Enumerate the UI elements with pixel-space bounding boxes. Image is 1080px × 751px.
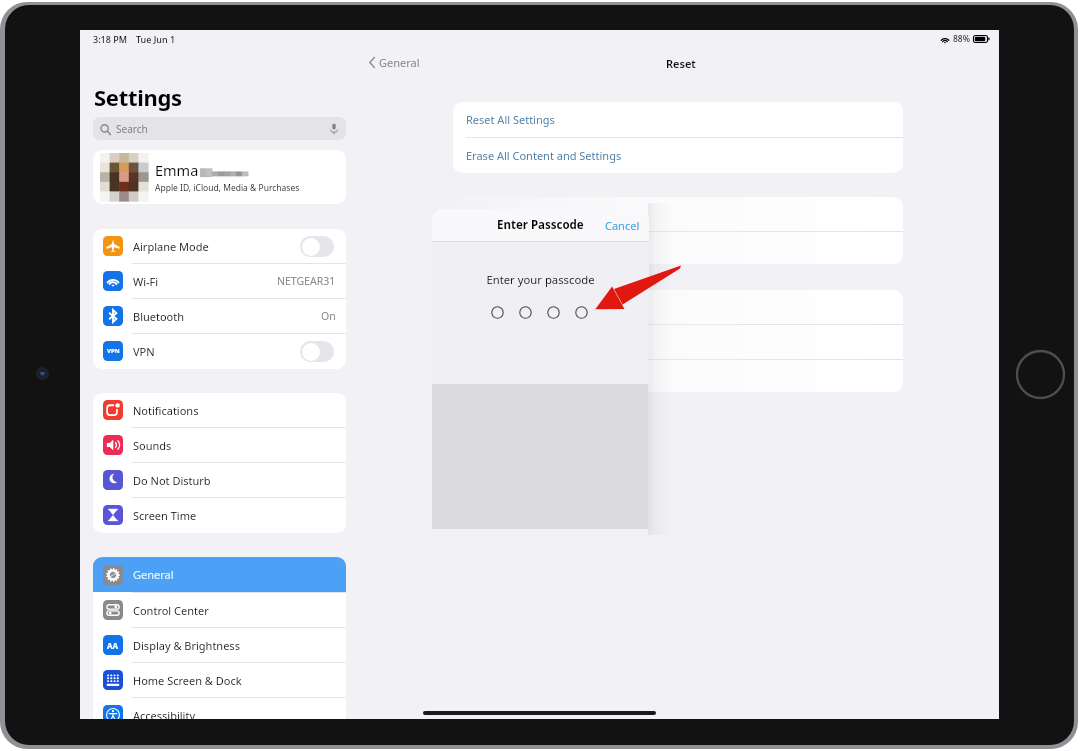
staticText: Home Screen & Dock (133, 673, 242, 688)
staticText: Reset (666, 56, 696, 71)
staticText: Bluetooth (133, 309, 185, 324)
button[interactable]: Bluetooth (93, 299, 346, 333)
staticText: 88% (953, 33, 970, 45)
button[interactable]: Search (93, 117, 346, 140)
button[interactable]: Reset All Settings (453, 102, 903, 137)
staticText: VPN (133, 344, 155, 359)
button[interactable]: Home button (1015, 349, 1066, 400)
button[interactable]: Sounds (93, 428, 346, 462)
button[interactable]: Do Not Disturb (93, 463, 346, 497)
staticText: Do Not Disturb (133, 473, 211, 488)
staticText: Enter Passcode (497, 217, 584, 233)
staticText: Enter your passcode (432, 272, 649, 287)
button[interactable]: VPN (93, 334, 346, 368)
staticText: 3:18 PM (93, 33, 127, 45)
button[interactable]: Cancel (605, 218, 640, 233)
button[interactable]: Erase All Content and Settings (453, 138, 903, 173)
staticText: Apple ID, iCloud, Media & Purchases (155, 182, 300, 194)
button[interactable]: Screen Time (93, 498, 346, 532)
button[interactable]: Airplane Mode toggle (300, 236, 334, 257)
button[interactable]: Notifications (93, 393, 346, 427)
staticText: Sounds (133, 438, 172, 453)
staticText: Accessibility (133, 708, 196, 719)
staticText: Cancel (605, 218, 640, 233)
other: Pointer arrow (594, 263, 684, 313)
staticText: Wi-Fi (133, 274, 159, 289)
button[interactable]: Accessibility (93, 698, 346, 719)
staticText: NETGEAR31 (277, 274, 336, 288)
staticText: Erase All Content and Settings (466, 148, 622, 163)
staticText: General (133, 567, 174, 582)
staticText: Reset All Settings (466, 112, 555, 127)
staticText: Tue Jun 1 (136, 33, 176, 45)
button[interactable]: AA (93, 628, 346, 662)
button[interactable]: VPN toggle (300, 341, 334, 362)
button[interactable]: General (93, 557, 346, 592)
staticText: AA (107, 640, 119, 651)
button[interactable]: Home Screen & Dock (93, 663, 346, 697)
staticText: Airplane Mode (133, 239, 209, 254)
button[interactable]: Control Center (93, 593, 346, 627)
button[interactable]: Airplane Mode (93, 229, 346, 263)
staticText: Control Center (133, 603, 209, 618)
staticText: VPN (107, 347, 120, 355)
button[interactable]: Voice search (329, 121, 339, 137)
staticText: On (321, 309, 336, 323)
button[interactable]: Emma (93, 150, 346, 204)
staticText: Display & Brightness (133, 638, 240, 653)
button[interactable]: General (368, 55, 420, 70)
button[interactable]: Wi-Fi (93, 264, 346, 298)
staticText: General (379, 55, 420, 70)
staticText: Notifications (133, 403, 199, 418)
staticText: Search (116, 122, 148, 136)
staticText: Settings (94, 82, 182, 112)
staticText: Screen Time (133, 508, 197, 523)
staticText: Emma (155, 160, 199, 180)
